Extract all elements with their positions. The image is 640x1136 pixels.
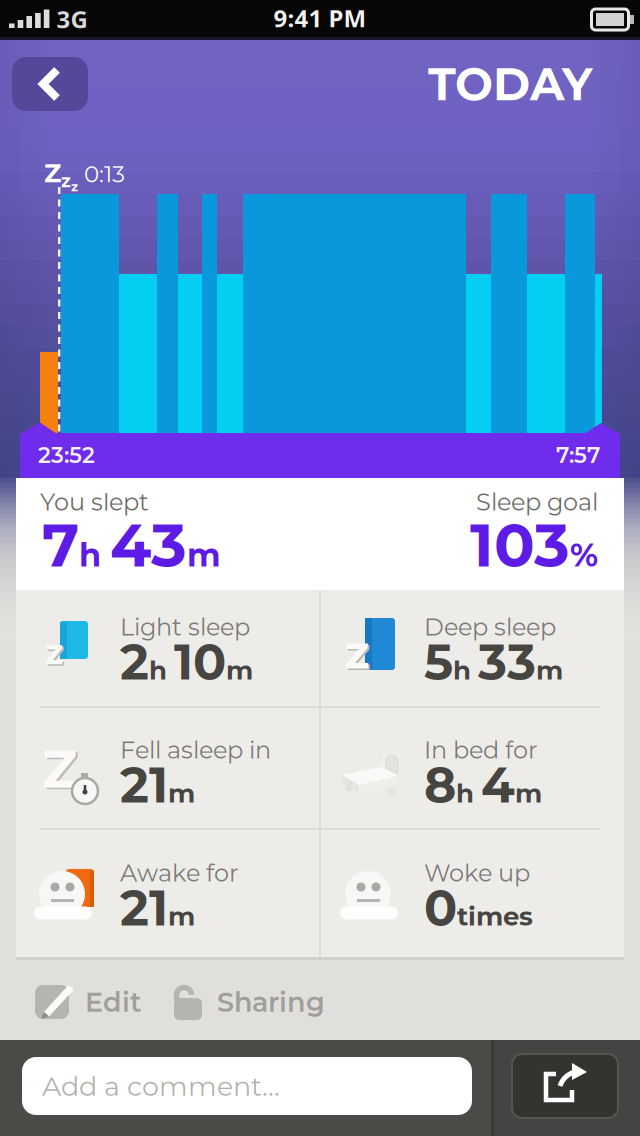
staticText: Woke up — [424, 858, 530, 888]
staticText: 21m — [120, 756, 195, 814]
staticText: 9:41 PM — [273, 2, 366, 34]
staticText: 2h 10m — [120, 633, 253, 691]
staticText: z — [346, 625, 371, 682]
staticText: 8h 4m — [424, 756, 542, 814]
staticText: Light sleep — [120, 612, 250, 642]
staticText: 23:52 — [38, 442, 95, 468]
button[interactable]: Edit — [35, 983, 141, 1021]
staticText: 3G — [56, 3, 87, 35]
staticText: Edit — [85, 985, 141, 1018]
staticText: Awake for — [120, 858, 239, 888]
staticText: 7h 43m — [42, 509, 221, 581]
staticText: In bed for — [424, 735, 538, 765]
staticText: 5h 33m — [424, 633, 563, 691]
staticText: Add a comment... — [42, 1069, 280, 1102]
button[interactable]: Sharing — [171, 983, 325, 1021]
staticText: 21m — [120, 879, 195, 937]
staticText: 103% — [470, 509, 598, 581]
staticText: z — [45, 631, 63, 673]
staticText: z — [344, 624, 369, 680]
staticText: 7:57 — [556, 442, 600, 468]
staticText: Deep sleep — [424, 612, 556, 642]
staticText: 0times — [424, 879, 533, 937]
button[interactable]: Share — [512, 1054, 618, 1118]
staticText: Zzz 0:13 — [44, 158, 125, 194]
staticText: You slept — [40, 487, 149, 517]
button[interactable]: Add a comment — [22, 1057, 472, 1115]
staticText: z — [46, 633, 64, 674]
staticText: Z — [44, 739, 79, 802]
button[interactable]: Back — [12, 57, 88, 111]
staticText: Sleep goal — [476, 487, 598, 517]
staticText: Z — [42, 737, 77, 801]
staticText: Sharing — [217, 985, 325, 1018]
staticText: TODAY — [428, 57, 592, 111]
staticText: Fell asleep in — [120, 735, 271, 765]
